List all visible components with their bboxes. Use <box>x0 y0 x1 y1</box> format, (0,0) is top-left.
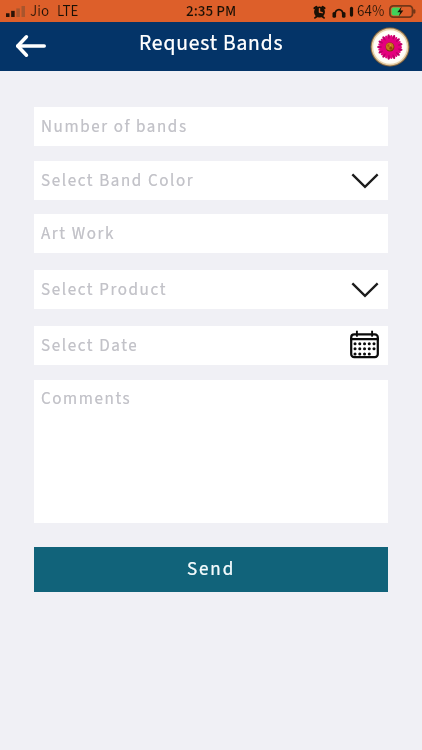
button[interactable]: Back <box>9 25 53 69</box>
staticText: Request Bands <box>139 28 284 59</box>
staticText: Select Date <box>41 334 139 358</box>
button[interactable]: Number of bands <box>34 107 388 146</box>
staticText: Jio <box>30 1 50 22</box>
staticText: Number of bands <box>41 115 188 139</box>
staticText: Select Band Color <box>41 169 195 193</box>
staticText: Art Work <box>41 222 115 246</box>
staticText: Send <box>187 556 236 583</box>
staticText: 64% <box>357 1 385 22</box>
button[interactable]: Profile <box>370 27 410 67</box>
staticText: Comments <box>41 387 132 411</box>
staticText: Select Product <box>41 278 167 302</box>
button[interactable]: Art Work <box>34 214 388 253</box>
button[interactable]: Comments <box>34 380 388 523</box>
staticText: LTE <box>57 1 79 22</box>
button[interactable]: Select Band Color <box>34 161 388 200</box>
button[interactable]: Send <box>34 547 388 592</box>
button[interactable]: Select Product <box>34 270 388 309</box>
staticText: 2:35 PM <box>186 1 237 22</box>
button[interactable]: Select Date <box>34 326 388 365</box>
